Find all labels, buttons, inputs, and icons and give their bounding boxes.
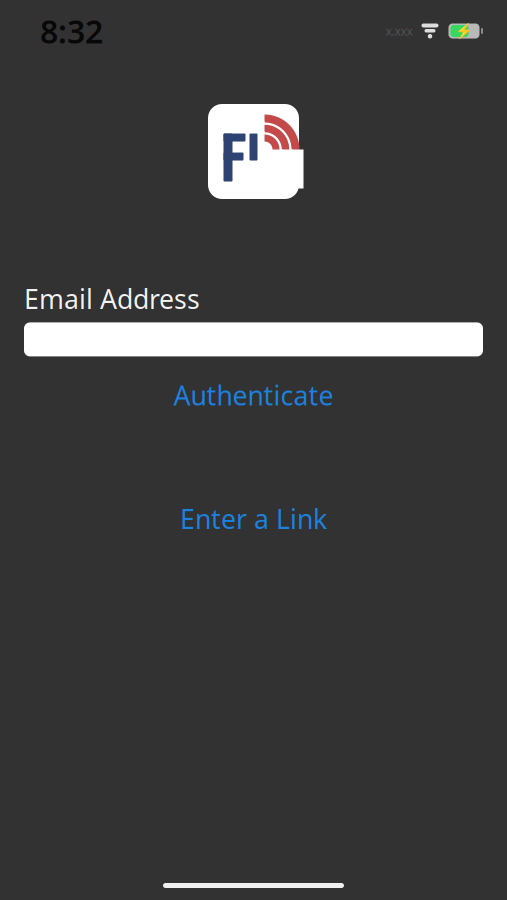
button[interactable]: Email Address text field <box>24 322 483 356</box>
staticText: 8:32 <box>40 10 103 52</box>
button[interactable]: Authenticate <box>0 372 507 418</box>
staticText: Authenticate <box>173 377 333 413</box>
staticText: x.xxx <box>385 23 412 39</box>
staticText: Email Address <box>24 281 200 316</box>
button[interactable]: Enter a Link <box>0 496 507 541</box>
staticText: Enter a Link <box>180 501 327 536</box>
staticText: ⚡ <box>455 23 473 39</box>
